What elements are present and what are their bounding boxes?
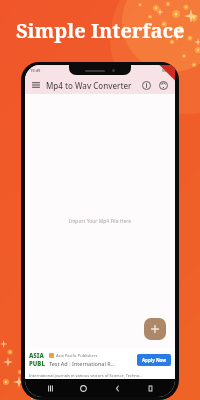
staticText: 56% [162,68,170,73]
button[interactable]: Add Mp4 file [144,318,166,340]
staticText: PUBL [29,360,45,368]
button[interactable]: Home [75,380,91,396]
button[interactable]: Apply Now [137,354,171,366]
staticText: International journals in various sector… [29,373,143,378]
button[interactable]: Help [157,79,170,92]
button[interactable]: Hide keyboard [142,380,158,396]
staticText: Test Ad : International R... [49,360,116,367]
staticText: Simple Interface [16,17,185,44]
staticText: Asia Pacific Publishers [56,353,98,358]
button[interactable]: ASIA [25,348,175,379]
staticText: Import Your Mp4 File Here [69,218,132,225]
staticText: Apply Now [142,357,167,363]
staticText: 19:49 [30,68,41,73]
staticText: ASIA [29,352,44,360]
button[interactable]: Information [140,79,153,92]
button[interactable]: Recent apps [42,380,58,396]
staticText: Mp4 to Wav Converter [46,80,140,91]
button[interactable]: Open navigation menu [30,79,42,91]
button[interactable]: Back [109,380,125,396]
